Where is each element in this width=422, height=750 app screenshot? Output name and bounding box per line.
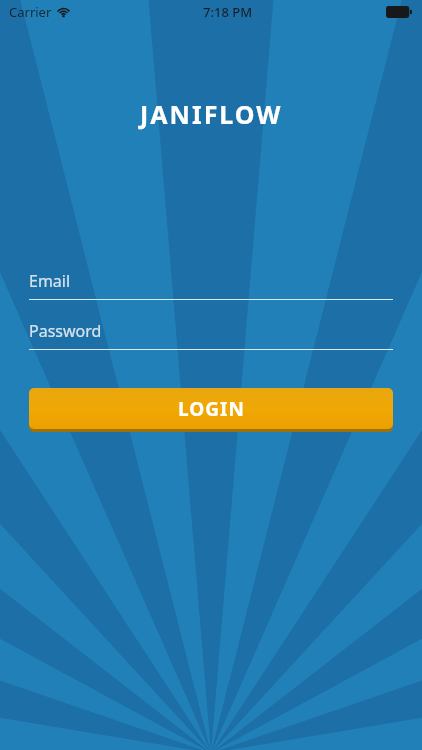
other: Battery full [386,6,413,18]
staticText: JANIFLOW [140,97,283,131]
staticText: 7:18 PM [203,3,253,21]
staticText: Password [29,320,102,342]
staticText: LOGIN [178,396,245,422]
staticText: Carrier [9,3,52,21]
button[interactable]: Email [29,263,393,300]
button[interactable]: LOGIN [29,388,393,429]
staticText: Email [29,270,71,292]
button[interactable]: Password [29,313,393,350]
other: Wi-Fi [57,6,70,19]
